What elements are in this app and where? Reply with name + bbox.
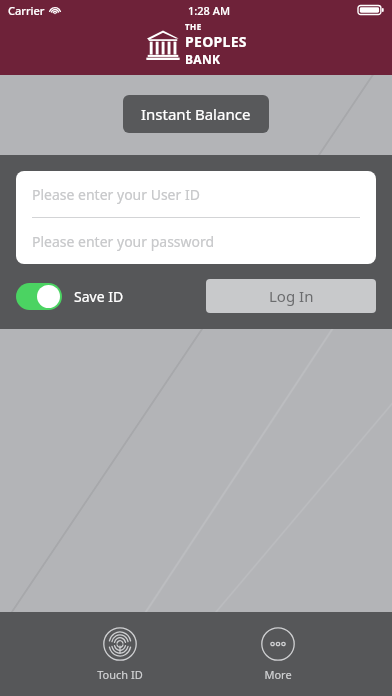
staticText: Please enter your password (32, 232, 215, 251)
staticText: Touch ID (97, 667, 143, 682)
staticText: Please enter your User ID (32, 185, 200, 204)
staticText: More (264, 667, 292, 682)
button[interactable]: Please enter your password (16, 218, 376, 264)
staticText: THE (185, 21, 202, 32)
staticText: Log In (269, 286, 314, 306)
staticText: Instant Balance (141, 104, 251, 124)
button[interactable]: Log In (206, 279, 376, 313)
button[interactable]: Save ID (16, 283, 124, 310)
button[interactable]: Please enter your User ID (16, 171, 376, 217)
staticText: PEOPLES (185, 32, 247, 51)
button[interactable]: Touch ID (77, 621, 163, 688)
staticText: Carrier (8, 3, 45, 18)
button[interactable]: More (241, 621, 315, 688)
staticText: BANK (185, 51, 221, 67)
staticText: Save ID (74, 287, 124, 306)
staticText: 1:28 AM (188, 3, 231, 18)
button[interactable]: Instant Balance (123, 95, 269, 133)
